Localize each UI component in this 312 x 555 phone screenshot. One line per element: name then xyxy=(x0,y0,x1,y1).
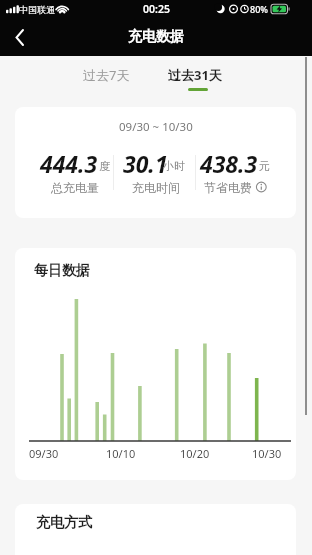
staticText: 过去31天 xyxy=(168,66,222,84)
staticText: 充电方式 xyxy=(36,514,92,532)
staticText: 09/30 ~ 10/30 xyxy=(119,119,193,135)
button[interactable] xyxy=(253,179,269,195)
staticText: 438.3 xyxy=(200,148,258,179)
button[interactable] xyxy=(64,56,147,107)
staticText: 80% xyxy=(250,3,268,15)
staticText: 充电数据 xyxy=(128,28,184,46)
staticText: 总充电量 xyxy=(51,180,99,195)
staticText: 10/10 xyxy=(106,446,136,461)
staticText: 444.3 xyxy=(40,148,98,179)
staticText: 10/30 xyxy=(252,446,282,461)
staticText: 节省电费 xyxy=(204,180,252,195)
staticText: 小时 xyxy=(163,159,185,173)
button[interactable] xyxy=(0,19,44,56)
button[interactable] xyxy=(153,56,237,107)
staticText: 过去7天 xyxy=(83,66,130,84)
staticText: 10/20 xyxy=(180,446,210,461)
staticText: 中国联通 xyxy=(19,4,55,15)
staticText: 每日数据 xyxy=(34,262,90,280)
staticText: 00:25 xyxy=(143,2,170,16)
staticText: 09/30 xyxy=(29,446,59,461)
staticText: 30.1 xyxy=(123,148,168,179)
staticText: 充电时间 xyxy=(132,180,180,195)
staticText: 元 xyxy=(259,159,270,173)
staticText: 度 xyxy=(99,159,110,173)
